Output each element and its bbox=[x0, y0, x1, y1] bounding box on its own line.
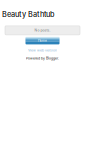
staticText: Home bbox=[38, 39, 47, 43]
staticText: No posts. bbox=[34, 28, 50, 32]
button[interactable]: View web version bbox=[0, 47, 85, 53]
button[interactable]: Home bbox=[25, 37, 59, 44]
staticText: View web version bbox=[28, 48, 57, 52]
staticText: Powered by Blogger. bbox=[26, 56, 59, 60]
staticText: Beauty Bathtub bbox=[2, 10, 55, 19]
